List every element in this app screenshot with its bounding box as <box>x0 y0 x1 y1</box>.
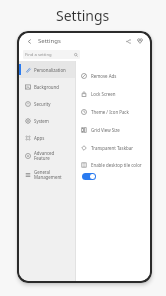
staticText: Personalization <box>34 67 66 73</box>
staticText: Lock Screen <box>91 91 116 97</box>
button[interactable]: Grid View Size <box>81 121 150 139</box>
staticText: Apps <box>34 135 45 141</box>
button[interactable]: System <box>19 112 75 129</box>
button[interactable]: Security <box>19 95 75 112</box>
button[interactable]: Theme / Icon Pack <box>81 103 150 121</box>
staticText: Theme / Icon Pack <box>91 109 129 115</box>
staticText: Grid View Size <box>91 127 120 133</box>
button[interactable]: Find a setting <box>23 50 80 59</box>
button[interactable]: Transparent Taskbar <box>81 139 150 157</box>
staticText: Background <box>34 84 59 90</box>
staticText: Transparent Taskbar <box>91 145 134 151</box>
button[interactable]: General Management <box>19 165 75 184</box>
button[interactable]: Back <box>24 36 34 46</box>
staticText: Find a setting <box>25 52 52 58</box>
staticText: Settings <box>56 6 110 25</box>
button[interactable]: Enable desktop tile color toggle <box>82 173 96 180</box>
staticText: System <box>34 118 49 124</box>
button[interactable]: Background <box>19 78 75 95</box>
staticText: General Management <box>34 169 62 180</box>
button[interactable]: Remove Ads <box>81 67 150 85</box>
button[interactable]: Enable desktop tile color <box>81 157 150 172</box>
button[interactable]: Apps <box>19 129 75 146</box>
button[interactable]: Personalization <box>19 61 75 78</box>
button[interactable]: Advanced Feature <box>19 146 75 165</box>
staticText: Settings <box>38 37 61 45</box>
staticText: Enable desktop tile color <box>91 162 142 168</box>
button[interactable]: Lock Screen <box>81 85 150 103</box>
button[interactable]: Favorite <box>135 36 145 46</box>
staticText: Advanced Feature <box>34 150 55 161</box>
staticText: Security <box>34 101 51 107</box>
button[interactable]: Share <box>123 36 133 46</box>
staticText: Remove Ads <box>91 73 117 79</box>
